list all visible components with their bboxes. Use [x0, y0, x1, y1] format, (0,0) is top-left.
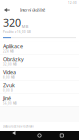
staticText: 224 MB [3, 50, 14, 53]
staticText: 12:30 [68, 1, 77, 5]
staticText: 32,00 MB [3, 63, 17, 66]
button[interactable]: Videa [0, 68, 79, 81]
button[interactable]: Back [0, 6, 14, 14]
staticText: Zvuk [3, 81, 15, 89]
staticText: 320 [3, 15, 21, 30]
button[interactable]: Recents [57, 131, 67, 140]
button[interactable]: Obrázky [0, 55, 79, 68]
staticText: 0,00 B [3, 89, 13, 92]
staticText: Aplikace [3, 42, 23, 50]
staticText: Interní úložiště [20, 7, 45, 13]
button[interactable]: Back [12, 131, 22, 140]
staticText: 8,00 MB [3, 76, 15, 79]
button[interactable]: Zvuk [0, 81, 79, 94]
staticText: Data uložená v rozhraní [3, 125, 34, 128]
button[interactable]: Data uložená v rozhraní [0, 122, 79, 131]
staticText: Obrázky [3, 55, 24, 63]
staticText: MB [22, 24, 29, 29]
staticText: 56,00 MB [3, 102, 17, 105]
staticText: Videa [3, 68, 16, 76]
staticText: Použito z 16,00 GB [3, 30, 31, 34]
button[interactable]: Aplikace [0, 42, 79, 55]
button[interactable]: Jiné [0, 94, 79, 107]
button[interactable]: Home [34, 131, 44, 140]
staticText: Jiné [3, 94, 11, 102]
